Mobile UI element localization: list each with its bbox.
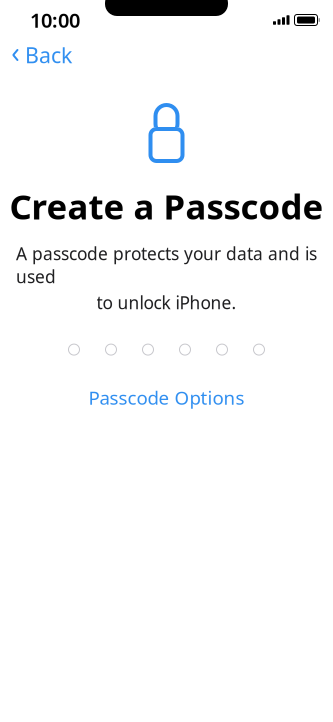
staticText: A passcode protects your data and is use…: [16, 242, 317, 288]
staticText: Create a Passcode: [9, 183, 323, 229]
staticText: 10:00: [30, 7, 80, 33]
staticText: Passcode Options: [88, 385, 244, 410]
staticText: Back: [25, 41, 72, 69]
button[interactable]: Back: [0, 35, 72, 75]
staticText: to unlock iPhone.: [96, 291, 236, 314]
button[interactable]: Passcode Options: [74, 377, 258, 418]
